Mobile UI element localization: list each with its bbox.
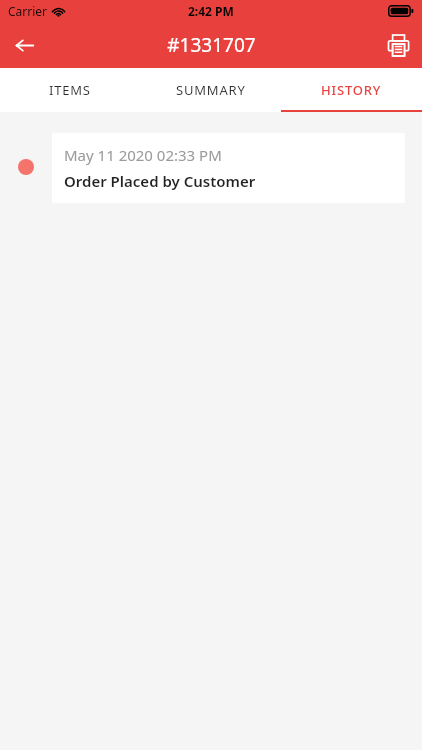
button[interactable]: Print <box>374 22 422 68</box>
staticText: May 11 2020 02:33 PM <box>64 145 222 165</box>
staticText: HISTORY <box>321 81 382 99</box>
button[interactable]: May 11 2020 02:33 PM <box>52 133 405 203</box>
staticText: Order Placed by Customer <box>64 171 256 191</box>
button[interactable]: Back <box>0 22 48 68</box>
staticText: SUMMARY <box>176 81 246 99</box>
button[interactable]: HISTORY <box>281 68 422 112</box>
button[interactable]: ITEMS <box>0 68 140 112</box>
staticText: 2:42 PM <box>188 3 234 19</box>
staticText: Carrier <box>8 3 48 19</box>
button[interactable]: SUMMARY <box>140 68 281 112</box>
staticText: #1331707 <box>167 32 256 58</box>
staticText: ITEMS <box>49 81 91 99</box>
